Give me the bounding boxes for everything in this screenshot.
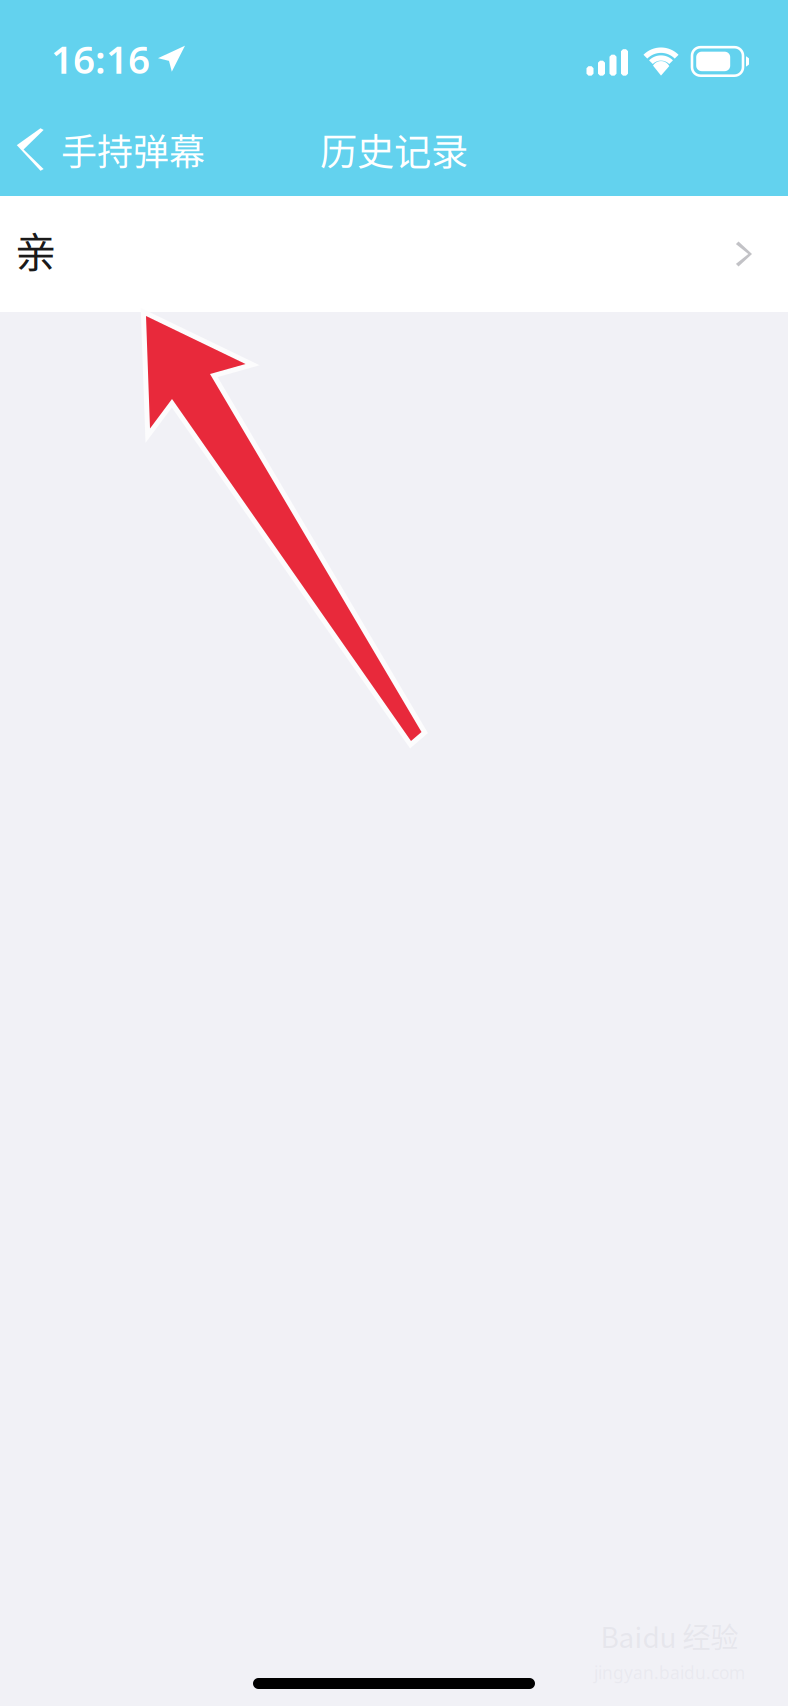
staticText: Baidu 经验 [600, 1615, 738, 1656]
staticText: 亲 [15, 220, 56, 279]
staticText: 16:16 [51, 33, 150, 84]
button[interactable]: 亲 [0, 196, 788, 312]
button[interactable]: 手持弹幕 [0, 96, 219, 196]
staticText: 历史记录 [320, 122, 468, 177]
staticText: 手持弹幕 [61, 123, 205, 175]
